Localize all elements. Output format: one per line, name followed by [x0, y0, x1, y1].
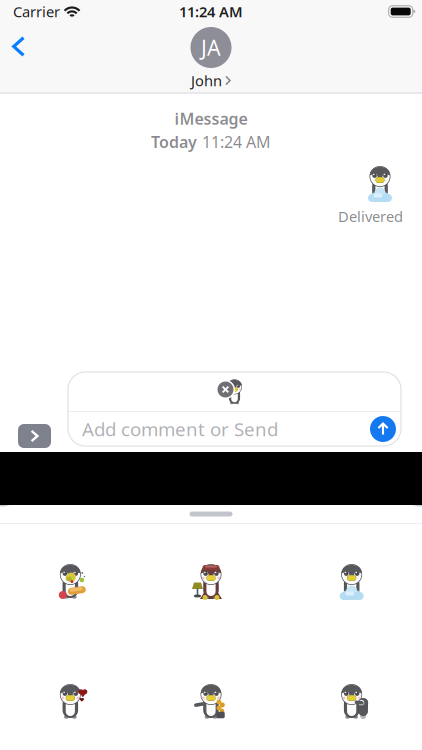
button[interactable]: More apps	[287, 454, 341, 506]
staticText: Delivered	[338, 206, 403, 226]
staticText: Today	[151, 131, 197, 152]
staticText: 11:24 AM	[202, 131, 271, 152]
button[interactable]: Photos	[5, 454, 61, 506]
button[interactable]: Sticker	[0, 666, 141, 736]
staticText: 11:24 AM	[179, 2, 243, 21]
button[interactable]: Back	[0, 26, 41, 71]
staticText: JA	[201, 33, 221, 62]
button[interactable]: Expand apps	[0, 424, 68, 452]
staticText: Add comment or Send	[82, 417, 278, 441]
staticText: John	[191, 71, 222, 90]
button[interactable]: Sticker	[141, 666, 281, 736]
button[interactable]: Send	[370, 416, 401, 442]
button[interactable]: Sticker	[141, 546, 281, 616]
button[interactable]: Apple Pay	[61, 454, 120, 506]
button[interactable]: Remove sticker	[216, 380, 235, 399]
button[interactable]: Images	[120, 454, 174, 506]
staticText: iMessage	[174, 108, 247, 129]
staticText: Carrier	[13, 2, 60, 21]
button[interactable]: Stickers	[239, 454, 287, 505]
button[interactable]: Sticker	[281, 666, 422, 736]
button[interactable]: Digital Touch	[174, 454, 229, 506]
button[interactable]: Sticker	[281, 546, 422, 616]
button[interactable]: Sticker	[0, 546, 141, 616]
